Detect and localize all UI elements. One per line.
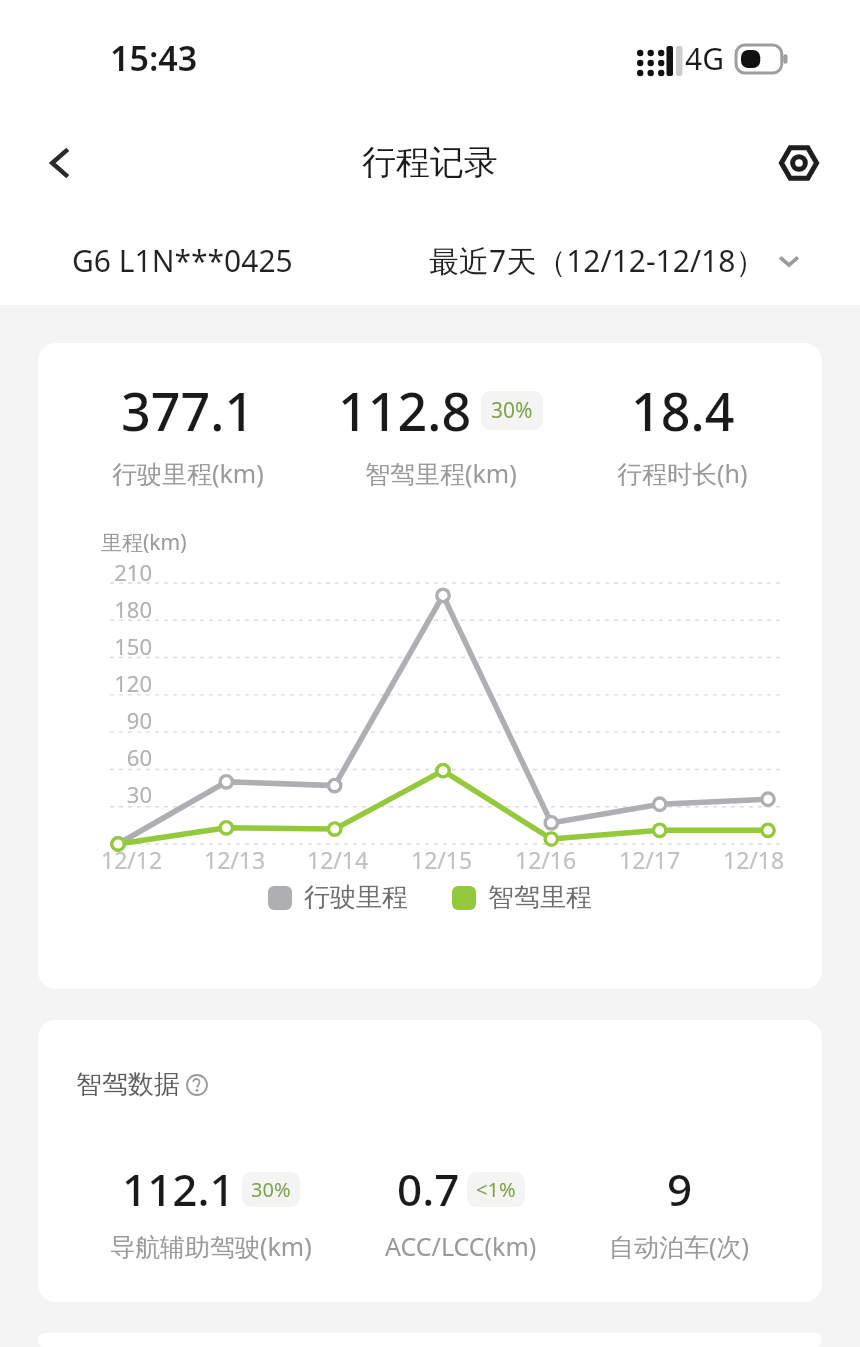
staticText: 30 xyxy=(90,779,152,809)
staticText: 180 xyxy=(90,594,152,624)
staticText: 90 xyxy=(90,705,152,735)
staticText: 自动泊车(次) xyxy=(609,1229,750,1263)
staticText: 4G xyxy=(685,38,724,79)
staticText: 行驶里程(km) xyxy=(112,456,264,490)
staticText: 里程(km) xyxy=(101,528,187,557)
staticText: 12/12 xyxy=(101,844,163,875)
staticText: 导航辅助驾驶(km) xyxy=(110,1229,312,1263)
staticText: 112.1 xyxy=(122,1159,235,1219)
staticText: 智驾里程 xyxy=(488,881,592,914)
button[interactable]: 最近7天（12/12-12/18） xyxy=(429,240,802,281)
other: Help xyxy=(186,1074,208,1096)
button[interactable]: 智驾里程 xyxy=(452,881,592,914)
staticText: 377.1 xyxy=(121,375,255,446)
staticText: 12/16 xyxy=(515,844,577,875)
staticText: 112.8 xyxy=(338,375,472,446)
staticText: 12/14 xyxy=(307,844,369,875)
staticText: 智驾数据 xyxy=(76,1068,180,1101)
staticText: 30% xyxy=(491,396,533,425)
staticText: 行程时长(h) xyxy=(617,456,748,490)
staticText: <1% xyxy=(476,1176,516,1203)
button[interactable]: Settings xyxy=(768,132,830,194)
staticText: 18.4 xyxy=(631,375,735,446)
staticText: 12/18 xyxy=(723,844,785,875)
staticText: 最近7天（12/12-12/18） xyxy=(429,240,766,281)
staticText: 150 xyxy=(90,631,152,661)
staticText: 行程记录 xyxy=(362,141,498,184)
button[interactable]: G6 L1N***0425 xyxy=(72,240,293,281)
staticText: 12/13 xyxy=(204,844,266,875)
staticText: ACC/LCC(km) xyxy=(385,1229,537,1263)
staticText: 30% xyxy=(251,1176,291,1203)
button[interactable]: Back xyxy=(30,132,92,194)
staticText: 12/15 xyxy=(411,844,473,875)
staticText: 120 xyxy=(90,668,152,698)
staticText: 9 xyxy=(667,1159,693,1219)
staticText: 智驾里程(km) xyxy=(365,456,517,490)
staticText: 15:43 xyxy=(110,35,198,81)
button[interactable]: 智驾数据 xyxy=(76,1068,208,1101)
staticText: 0.7 xyxy=(397,1159,460,1219)
button[interactable]: 行驶里程 xyxy=(268,881,408,914)
staticText: 60 xyxy=(90,742,152,772)
staticText: 12/17 xyxy=(619,844,681,875)
staticText: 行驶里程 xyxy=(304,881,408,914)
staticText: 210 xyxy=(90,557,152,587)
